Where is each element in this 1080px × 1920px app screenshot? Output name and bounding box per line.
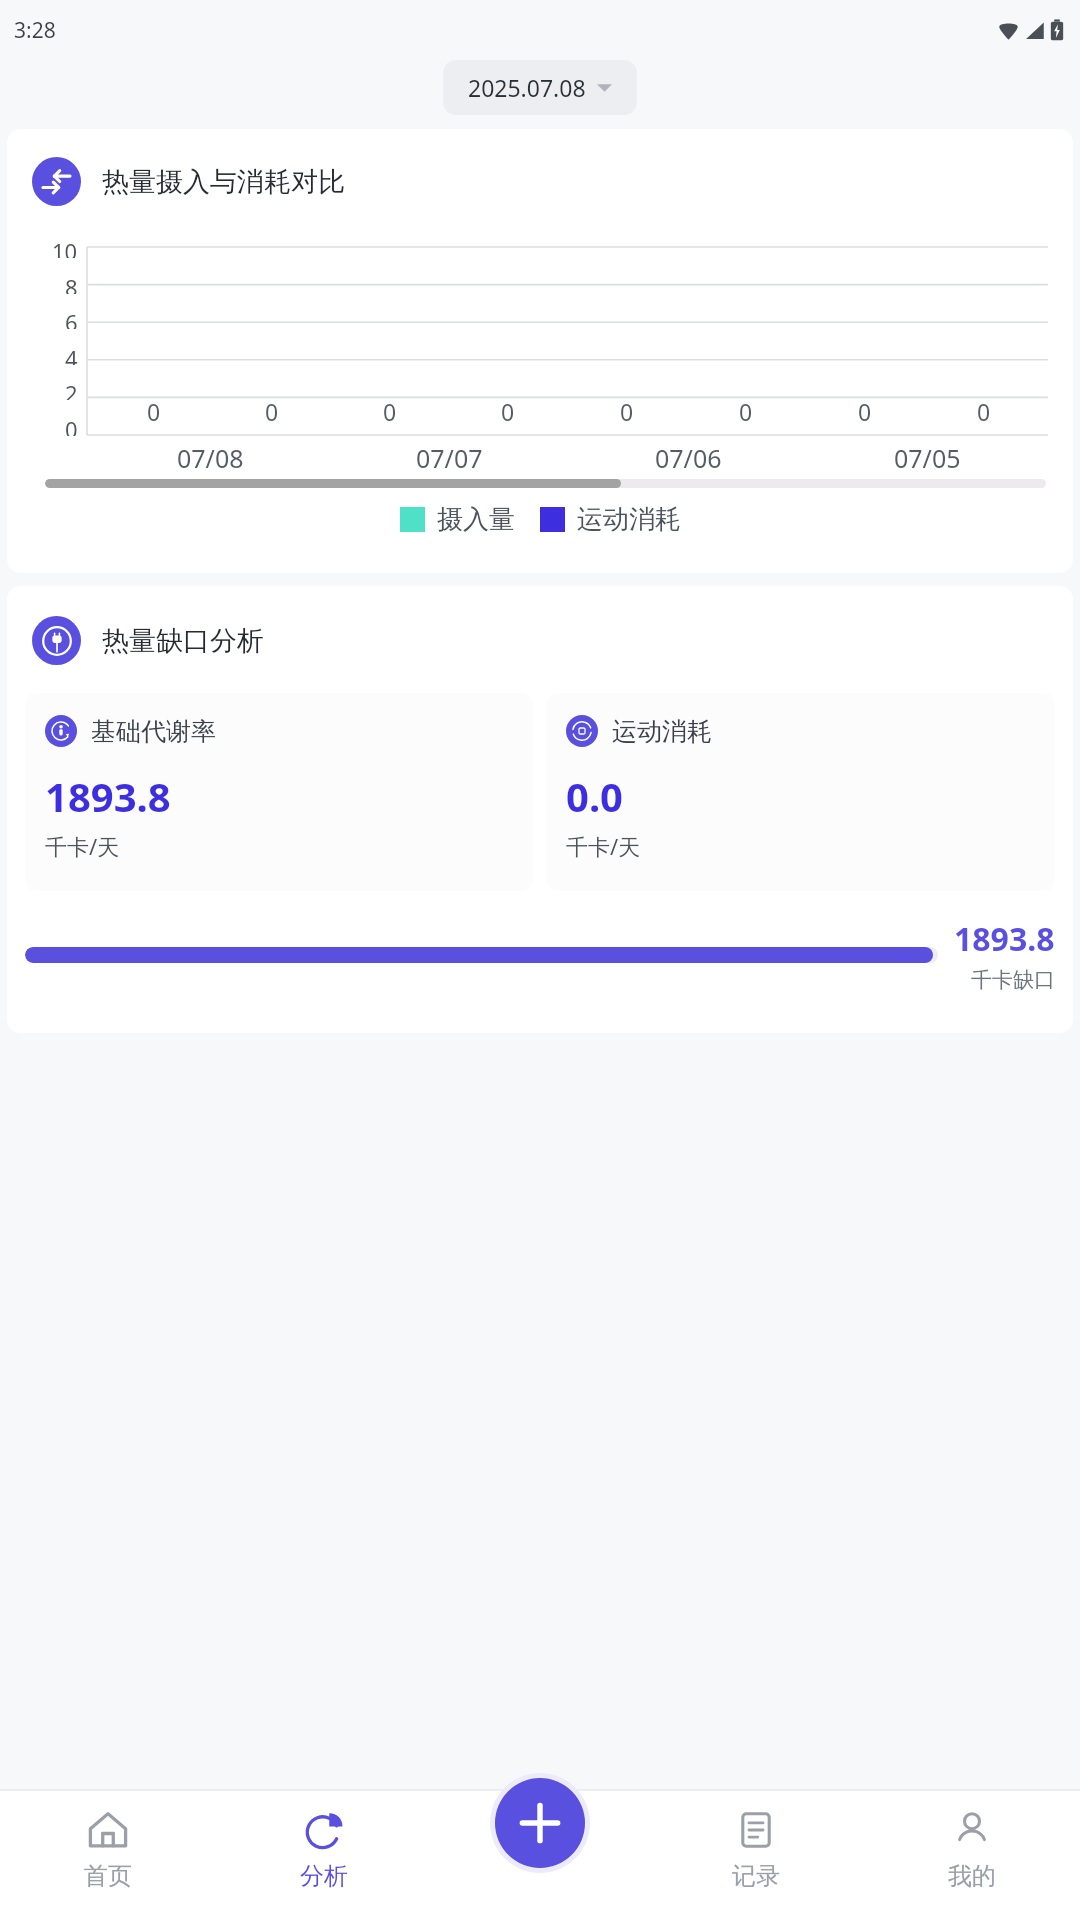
staticText: 热量缺口分析 xyxy=(102,624,264,658)
button[interactable]: 运动消耗 xyxy=(546,693,1055,891)
staticText: 运动消耗 xyxy=(577,503,681,536)
staticText: 0 xyxy=(65,414,78,436)
staticText: 0 xyxy=(501,396,515,427)
staticText: 我的 xyxy=(948,1861,996,1891)
staticText: 千卡/天 xyxy=(45,831,120,861)
staticText: 运动消耗 xyxy=(612,716,712,747)
button[interactable]: 分析 xyxy=(216,1790,432,1920)
staticText: 0 xyxy=(739,396,753,427)
staticText: 记录 xyxy=(732,1861,780,1891)
staticText: 基础代谢率 xyxy=(91,716,216,747)
staticText: 0.0 xyxy=(566,769,623,823)
button[interactable]: 2025.07.08 xyxy=(443,60,637,115)
staticText: 摄入量 xyxy=(437,503,515,536)
staticText: 3:28 xyxy=(14,16,56,45)
button[interactable]: Add record xyxy=(495,1778,585,1868)
staticText: 8 xyxy=(65,272,78,294)
staticText: 2 xyxy=(65,378,78,400)
staticText: 分析 xyxy=(300,1861,348,1891)
button[interactable]: 基础代谢率 xyxy=(25,693,533,891)
staticText: 6 xyxy=(65,307,78,329)
staticText: 07/05 xyxy=(894,441,961,471)
staticText: 首页 xyxy=(84,1861,132,1891)
staticText: 0 xyxy=(977,396,991,427)
button[interactable]: 我的 xyxy=(864,1790,1080,1920)
staticText: 2025.07.08 xyxy=(468,72,586,103)
staticText: 4 xyxy=(65,343,78,365)
staticText: 0 xyxy=(620,396,634,427)
staticText: 0 xyxy=(265,396,279,427)
staticText: 07/06 xyxy=(655,441,722,471)
staticText: 0 xyxy=(858,396,872,427)
staticText: 千卡/天 xyxy=(566,831,641,861)
staticText: 0 xyxy=(383,396,397,427)
staticText: 1893.8 xyxy=(954,917,1055,961)
staticText: 千卡缺口 xyxy=(971,967,1055,993)
staticText: 0 xyxy=(147,396,161,427)
staticText: 1893.8 xyxy=(45,769,171,823)
staticText: 热量摄入与消耗对比 xyxy=(102,165,345,199)
button[interactable]: 首页 xyxy=(0,1790,216,1920)
staticText: 10 xyxy=(52,236,78,258)
button[interactable]: 记录 xyxy=(648,1790,864,1920)
staticText: 07/07 xyxy=(416,441,483,471)
staticText: 07/08 xyxy=(177,441,244,471)
